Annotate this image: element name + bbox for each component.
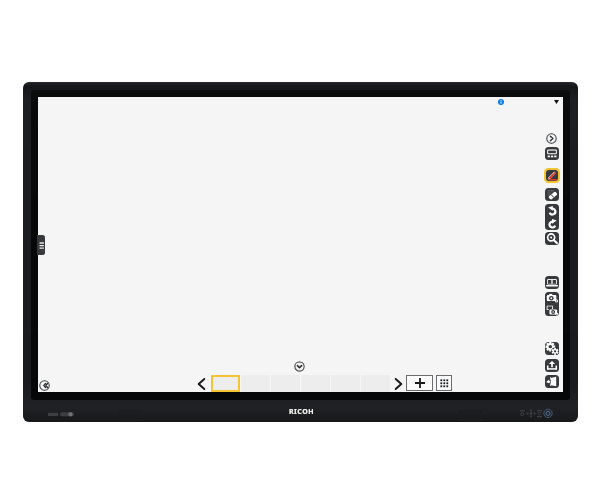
button[interactable]: Expand menu xyxy=(551,97,561,106)
button[interactable]: Open side menu xyxy=(37,235,45,255)
button[interactable]: Hide page strip xyxy=(294,361,305,372)
button[interactable]: Add page xyxy=(406,375,433,391)
button[interactable]: Exit xyxy=(545,375,559,388)
button[interactable]: Share screen xyxy=(545,276,559,289)
button[interactable]: Undo xyxy=(545,204,559,217)
button[interactable]: Page 1 xyxy=(211,375,240,392)
button[interactable]: Pen xyxy=(546,170,558,181)
button[interactable]: Redo xyxy=(545,217,559,230)
button[interactable]: Screen capture xyxy=(545,304,559,316)
button[interactable]: Upload xyxy=(545,359,559,372)
button[interactable]: Info xyxy=(496,97,506,107)
staticText: RICOH xyxy=(289,407,315,417)
button[interactable]: Camera xyxy=(545,292,559,304)
button[interactable]: Eraser xyxy=(545,188,559,201)
button[interactable]: Next page xyxy=(392,376,404,391)
button[interactable]: Previous page xyxy=(195,376,207,391)
button[interactable]: Settings xyxy=(545,342,559,355)
button[interactable]: Zoom xyxy=(545,232,559,245)
button[interactable]: Collapse all xyxy=(39,380,50,391)
button[interactable]: All pages xyxy=(436,375,452,391)
button[interactable]: Collapse toolbar xyxy=(546,133,557,144)
button[interactable]: Calculator xyxy=(545,147,559,160)
